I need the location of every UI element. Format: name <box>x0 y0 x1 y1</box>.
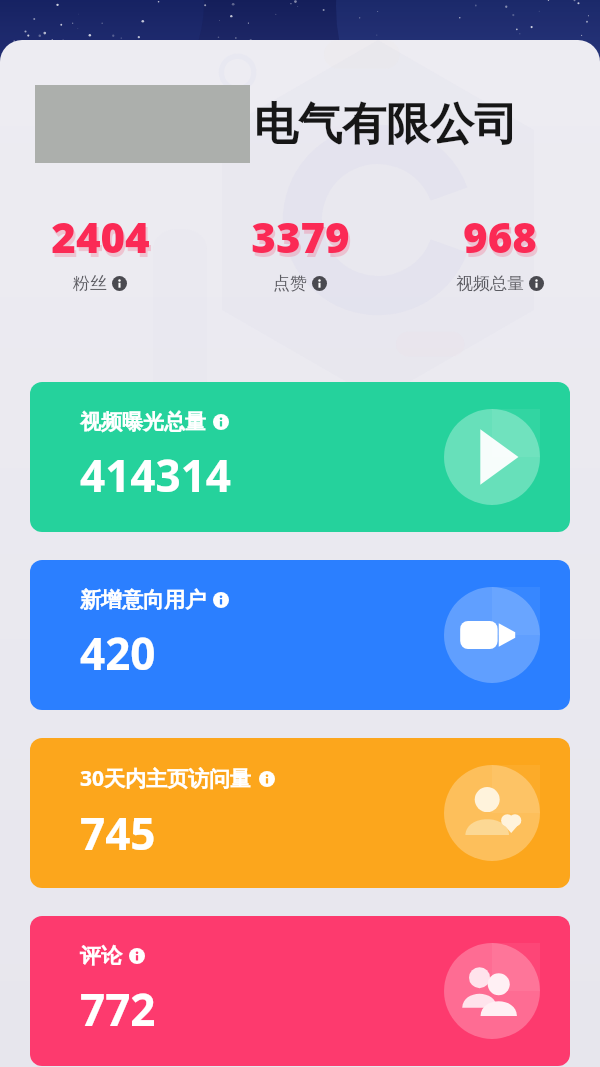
button[interactable]: 新增意向用户 <box>30 560 570 710</box>
staticText: 30天内主页访问量 <box>80 764 252 793</box>
staticText: 新增意向用户 <box>80 587 206 613</box>
staticText: 745 <box>80 803 156 863</box>
button[interactable]: 评论 <box>30 916 570 1066</box>
staticText: 2404 <box>51 208 150 265</box>
staticText: 视频曝光总量 <box>80 409 206 435</box>
staticText: 3379 <box>251 208 350 265</box>
staticText: 414314 <box>80 445 232 505</box>
staticText: 968 <box>463 208 537 265</box>
staticText: 点赞 <box>273 273 307 294</box>
staticText: 视频总量 <box>456 273 524 294</box>
button[interactable]: 视频曝光总量 <box>30 382 570 532</box>
staticText: 3379 <box>253 212 352 269</box>
staticText: 电气有限公司 <box>254 97 518 152</box>
button[interactable]: 2404 <box>0 208 200 294</box>
staticText: 粉丝 <box>73 273 107 294</box>
staticText: 2404 <box>53 212 152 269</box>
staticText: 评论 <box>80 943 122 969</box>
button[interactable]: 968 <box>400 208 600 294</box>
staticText: 420 <box>80 623 156 683</box>
staticText: 772 <box>80 979 156 1039</box>
button[interactable]: 3379 <box>200 208 400 294</box>
button[interactable]: 30天内主页访问量 <box>30 738 570 888</box>
staticText: 968 <box>465 212 539 269</box>
